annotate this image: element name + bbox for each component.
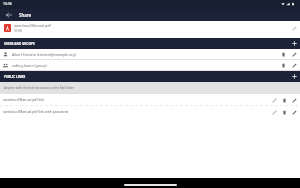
button[interactable]: Delete bbox=[278, 49, 288, 59]
staticText: sailing-lovers (group) bbox=[12, 63, 47, 68]
button[interactable]: Edit bbox=[289, 107, 299, 117]
button[interactable]: Add bbox=[289, 38, 300, 49]
button[interactable]: Edit bbox=[289, 60, 299, 70]
staticText: Anyone with the link has access to the f… bbox=[4, 86, 75, 90]
button[interactable]: owncloud Manual.pdf link with password bbox=[0, 106, 300, 117]
button[interactable]: Edit bbox=[289, 95, 299, 105]
button[interactable]: Copy link bbox=[269, 95, 279, 105]
staticText: Share bbox=[19, 12, 31, 18]
button[interactable]: sailing-lovers (group) bbox=[0, 60, 300, 70]
button[interactable]: Albert Einstein (einstein@example.org) bbox=[0, 49, 300, 59]
staticText: owncloud Manual.pdf link with password bbox=[3, 109, 69, 114]
staticText: owncloud Manual.pdf bbox=[14, 23, 51, 28]
staticText: owncloud Manual.pdf link bbox=[3, 97, 45, 102]
button[interactable]: owncloud Manual.pdf bbox=[0, 21, 300, 38]
button[interactable]: Delete bbox=[279, 95, 289, 105]
button[interactable]: Add bbox=[289, 71, 300, 82]
button[interactable]: Delete bbox=[278, 60, 288, 70]
staticText: USERS AND GROUPS bbox=[4, 42, 35, 46]
staticText: 10:36 bbox=[3, 1, 12, 6]
staticText: 93 KB bbox=[14, 29, 23, 33]
button[interactable]: Back bbox=[0, 9, 17, 21]
button[interactable]: owncloud Manual.pdf link bbox=[0, 94, 300, 105]
button[interactable]: Edit bbox=[289, 49, 299, 59]
button[interactable]: Delete bbox=[279, 107, 289, 117]
staticText: Albert Einstein (einstein@example.org) bbox=[12, 52, 76, 57]
button[interactable]: Copy link bbox=[289, 23, 299, 33]
button[interactable]: Copy link bbox=[269, 107, 279, 117]
staticText: PUBLIC LINKS bbox=[4, 75, 26, 79]
